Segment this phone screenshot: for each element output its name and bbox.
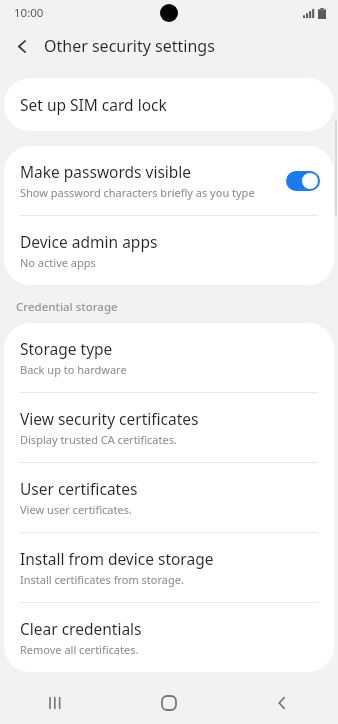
- button[interactable]: Install from device storage: [4, 532, 334, 602]
- button[interactable]: Back: [225, 682, 338, 724]
- staticText: Other security settings: [44, 35, 215, 57]
- button[interactable]: Recent apps: [0, 682, 112, 724]
- staticText: Set up SIM card lock: [20, 94, 167, 115]
- staticText: View security certificates: [20, 408, 199, 429]
- button[interactable]: Set up SIM card lock: [4, 78, 334, 131]
- staticText: Show password characters briefly as you …: [20, 185, 278, 200]
- staticText: Back up to hardware: [20, 362, 127, 377]
- staticText: Install certificates from storage.: [20, 572, 184, 587]
- staticText: No active apps: [20, 255, 96, 270]
- button[interactable]: Storage type: [4, 323, 334, 392]
- staticText: Credential storage: [16, 299, 118, 315]
- staticText: 10:00: [14, 5, 44, 21]
- button[interactable]: Make passwords visible: [4, 146, 334, 215]
- button[interactable]: User certificates: [4, 462, 334, 532]
- button[interactable]: View security certificates: [4, 392, 334, 462]
- staticText: Remove all certificates.: [20, 642, 139, 657]
- staticText: Device admin apps: [20, 231, 158, 252]
- staticText: Clear credentials: [20, 618, 142, 639]
- button[interactable]: Clear credentials: [4, 602, 334, 672]
- button[interactable]: Back: [0, 26, 44, 66]
- staticText: Storage type: [20, 338, 113, 359]
- staticText: User certificates: [20, 478, 138, 499]
- button[interactable]: Device admin apps: [4, 215, 334, 285]
- staticText: Install from device storage: [20, 548, 214, 569]
- staticText: View user certificates.: [20, 502, 132, 517]
- button[interactable]: Home: [112, 682, 225, 724]
- button[interactable]: Toggle: [286, 171, 320, 191]
- staticText: Make passwords visible: [20, 161, 192, 182]
- staticText: Display trusted CA certificates.: [20, 432, 177, 447]
